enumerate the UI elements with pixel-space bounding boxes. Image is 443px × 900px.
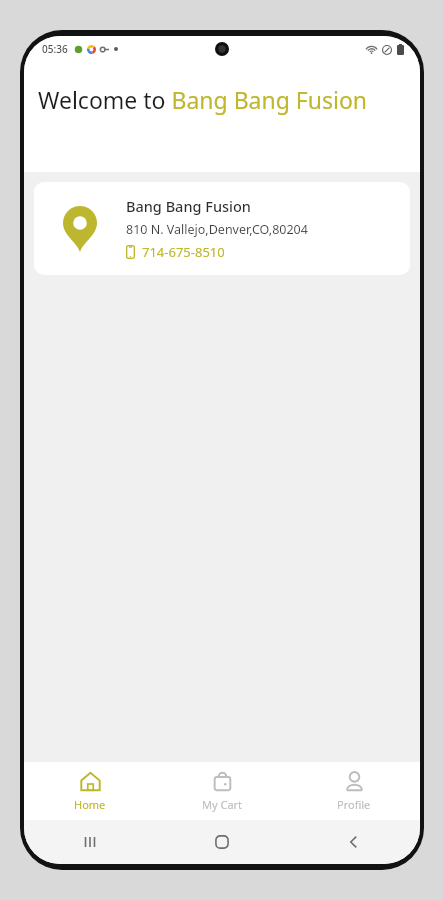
button[interactable]: 714-675-8510 [126, 243, 229, 261]
button[interactable]: Recent apps [24, 820, 156, 864]
button[interactable]: My Cart [156, 762, 288, 820]
button[interactable]: Home [156, 820, 288, 864]
button[interactable]: Home [24, 762, 156, 820]
staticText: Home [74, 797, 106, 812]
button[interactable]: Bang Bang Fusion [34, 182, 410, 275]
button[interactable]: Profile [288, 762, 420, 820]
staticText: 05:36 [42, 42, 68, 56]
staticText: 714-675-8510 [142, 243, 225, 261]
staticText: My Cart [202, 797, 243, 812]
staticText: Profile [337, 797, 371, 812]
staticText: Welcome to Bang Bang Fusion [38, 84, 368, 115]
staticText: Bang Bang Fusion [126, 196, 251, 216]
staticText: 810 N. Vallejo,Denver,CO,80204 [126, 221, 308, 238]
button[interactable]: Back [288, 820, 420, 864]
